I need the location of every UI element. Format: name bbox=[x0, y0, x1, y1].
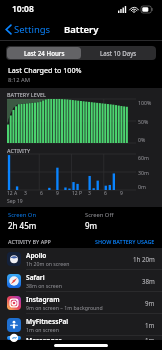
staticText: Apollo bbox=[26, 251, 47, 260]
staticText: 9m on screen – 1m background bbox=[26, 304, 103, 311]
staticText: Screen On bbox=[8, 211, 36, 219]
staticText: ACTIVITY bbox=[7, 147, 31, 154]
staticText: 3 bbox=[24, 190, 27, 197]
staticText: 10:08 bbox=[12, 3, 34, 15]
staticText: 1h 20m bbox=[133, 255, 155, 263]
staticText: 100% bbox=[138, 99, 152, 106]
staticText: Sep 19 bbox=[7, 198, 23, 205]
staticText: ACTIVITY BY APP bbox=[8, 238, 95, 245]
button[interactable]: Apollo bbox=[0, 248, 162, 270]
staticText: Instagram bbox=[26, 295, 60, 304]
staticText: 30m bbox=[138, 169, 149, 176]
staticText: Settings bbox=[14, 23, 51, 36]
staticText: 3 bbox=[88, 190, 91, 197]
staticText: 38m on screen bbox=[26, 282, 62, 289]
staticText: 50% bbox=[138, 118, 149, 125]
staticText: 1m bbox=[145, 336, 155, 340]
staticText: BATTERY LEVEL bbox=[7, 91, 46, 98]
staticText: 1m bbox=[145, 321, 155, 329]
button[interactable]: Last 24 Hours bbox=[7, 47, 81, 59]
staticText: SHOW BATTERY USAGE bbox=[95, 238, 155, 245]
button[interactable]: Safari bbox=[0, 270, 162, 292]
staticText: 2h 45m bbox=[8, 220, 37, 231]
button[interactable]: MyFitnessPal bbox=[0, 314, 162, 336]
staticText: Messenger bbox=[26, 336, 62, 340]
staticText: Safari bbox=[26, 273, 45, 282]
staticText: 0m bbox=[138, 183, 146, 190]
staticText: 1m on screen bbox=[26, 326, 59, 333]
staticText: 9 bbox=[56, 190, 59, 197]
staticText: 12 P bbox=[72, 190, 83, 197]
staticText: Last 24 Hours bbox=[24, 49, 65, 57]
staticText: Screen Off bbox=[85, 211, 114, 219]
staticText: 8:12 AM bbox=[8, 76, 30, 84]
staticText: 9m bbox=[145, 299, 155, 307]
button[interactable]: Instagram bbox=[0, 292, 162, 314]
staticText: 6 bbox=[40, 190, 43, 197]
staticText: 0% bbox=[138, 136, 146, 143]
staticText: Last Charged to 100% bbox=[8, 65, 82, 75]
staticText: 9m bbox=[85, 220, 98, 231]
staticText: 12 A bbox=[7, 190, 18, 197]
staticText: 60m bbox=[138, 154, 149, 161]
button[interactable]: SHOW BATTERY USAGE bbox=[95, 238, 155, 245]
staticText: Last 10 Days bbox=[100, 49, 137, 57]
staticText: 38m bbox=[142, 277, 155, 285]
button[interactable]: Last 10 Days bbox=[81, 47, 155, 59]
staticText: 9 bbox=[120, 190, 123, 197]
button[interactable]: Settings bbox=[5, 23, 51, 36]
staticText: 1h 20m on screen bbox=[26, 260, 70, 267]
staticText: MyFitnessPal bbox=[26, 317, 69, 326]
staticText: 6 bbox=[104, 190, 107, 197]
button[interactable]: Messenger bbox=[0, 336, 162, 340]
staticText: Battery bbox=[64, 23, 99, 36]
